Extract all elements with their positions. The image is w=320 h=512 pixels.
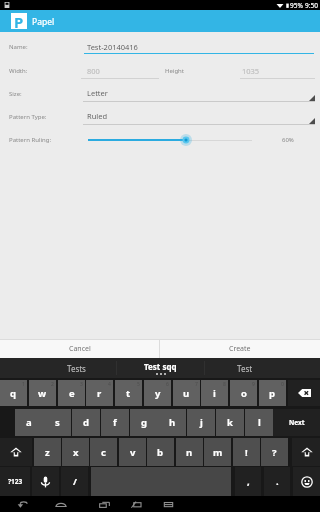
staticText: w <box>38 387 47 400</box>
button[interactable]: m <box>204 438 231 466</box>
button[interactable]: c <box>90 438 117 466</box>
staticText: . <box>276 475 279 488</box>
staticText: ?123 <box>8 477 23 486</box>
button[interactable]: t <box>115 380 142 406</box>
button[interactable]: Screenshot <box>124 496 148 512</box>
button[interactable]: i <box>201 380 228 406</box>
button[interactable]: a <box>15 409 43 436</box>
staticText: 95% <box>290 1 303 10</box>
staticText: Ruled <box>87 111 108 121</box>
button[interactable]: Next <box>273 409 320 436</box>
button[interactable]: Menu <box>156 496 180 512</box>
staticText: 1035 <box>242 66 260 76</box>
staticText: , <box>247 475 250 488</box>
staticText: Cancel <box>69 344 91 354</box>
staticText: v <box>130 446 136 459</box>
button[interactable]: ! <box>233 438 260 466</box>
staticText: j <box>200 416 203 429</box>
staticText: m <box>213 446 223 459</box>
button[interactable]: ?123 <box>0 467 30 496</box>
button[interactable]: s <box>43 409 71 436</box>
staticText: f <box>113 416 117 429</box>
button[interactable]: z <box>34 438 61 466</box>
button[interactable]: , <box>235 467 261 496</box>
staticText: Test <box>237 363 253 374</box>
staticText: u <box>183 387 190 400</box>
button[interactable]: k <box>216 409 244 436</box>
staticText: / <box>73 475 77 488</box>
button[interactable]: ? <box>261 438 288 466</box>
staticText: Create <box>229 344 251 354</box>
staticText: n <box>186 446 193 459</box>
button[interactable]: v <box>119 438 146 466</box>
button[interactable]: q <box>0 380 27 406</box>
staticText: 5 <box>137 381 140 388</box>
staticText: l <box>258 416 261 429</box>
button[interactable]: f <box>101 409 129 436</box>
button[interactable]: Ruled <box>83 109 315 125</box>
button[interactable]: Back <box>10 496 34 512</box>
button[interactable]: n <box>176 438 203 466</box>
staticText: P <box>14 12 24 28</box>
staticText: z <box>45 446 50 459</box>
button[interactable]: r <box>86 380 113 406</box>
button[interactable]: g <box>130 409 158 436</box>
staticText: Pattern Type: <box>9 113 47 121</box>
staticText: g <box>141 416 148 429</box>
staticText: 2 <box>51 381 54 388</box>
button[interactable]: / <box>61 467 88 496</box>
button[interactable]: Test sqq <box>117 358 204 378</box>
button[interactable]: Backspace <box>288 380 320 406</box>
button[interactable]: Create <box>160 340 320 358</box>
staticText: Size: <box>9 90 22 98</box>
staticText: 9 <box>252 381 255 388</box>
staticText: 0 <box>281 381 284 388</box>
staticText: y <box>155 387 161 400</box>
button[interactable]: Test <box>205 358 285 378</box>
button[interactable]: w <box>29 380 56 406</box>
staticText: Next <box>289 418 305 427</box>
button[interactable]: Shift <box>0 438 32 466</box>
staticText: Test-20140416 <box>87 42 138 52</box>
staticText: Test sqq <box>144 361 177 372</box>
button[interactable]: . <box>264 467 290 496</box>
button[interactable]: Emoji <box>293 467 320 496</box>
staticText: q <box>10 387 17 400</box>
staticText: 800 <box>87 66 100 76</box>
button[interactable]: d <box>72 409 100 436</box>
staticText: a <box>26 416 32 429</box>
staticText: r <box>97 387 102 400</box>
button[interactable]: l <box>245 409 273 436</box>
staticText: o <box>241 387 247 400</box>
staticText: b <box>157 446 164 459</box>
button[interactable]: p <box>259 380 286 406</box>
staticText: Letter <box>87 88 108 98</box>
button[interactable]: u <box>173 380 200 406</box>
staticText: 8 <box>223 381 226 388</box>
staticText: d <box>83 416 90 429</box>
button[interactable]: Letter <box>83 86 315 102</box>
button[interactable]: Home <box>49 496 73 512</box>
staticText: k <box>227 416 233 429</box>
button[interactable]: x <box>62 438 89 466</box>
button[interactable]: Recents <box>92 496 116 512</box>
staticText: x <box>73 446 79 459</box>
button[interactable] <box>80 130 260 150</box>
staticText: Pattern Ruling: <box>9 136 52 144</box>
button[interactable]: Cancel <box>0 340 159 358</box>
button[interactable]: o <box>230 380 257 406</box>
staticText: c <box>101 446 106 459</box>
button[interactable]: h <box>158 409 186 436</box>
button[interactable]: Shift <box>292 438 320 466</box>
button[interactable]: e <box>58 380 85 406</box>
button[interactable]: b <box>147 438 174 466</box>
staticText: Tests <box>67 363 86 374</box>
button[interactable]: y <box>144 380 171 406</box>
button[interactable]: j <box>187 409 215 436</box>
staticText: ? <box>272 446 277 459</box>
button[interactable]: Voice input <box>32 467 59 496</box>
button[interactable]: Tests <box>36 358 116 378</box>
staticText: 4 <box>108 381 111 388</box>
staticText: 6 <box>166 381 169 388</box>
